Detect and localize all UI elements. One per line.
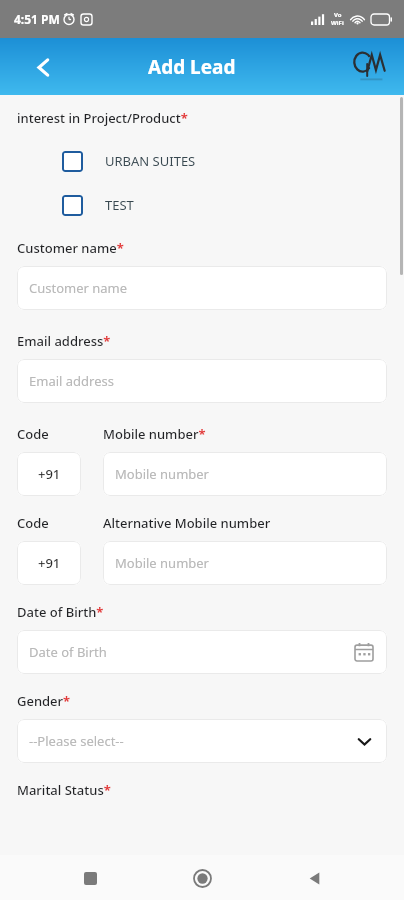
- staticText: Customer name*: [17, 239, 124, 257]
- staticText: Mobile number: [115, 554, 209, 572]
- button[interactable]: +91: [17, 452, 81, 496]
- staticText: 4:51 PM: [14, 11, 60, 27]
- staticText: +91: [38, 554, 61, 572]
- staticText: Vo: [334, 11, 342, 19]
- button[interactable]: Back: [26, 50, 60, 84]
- button[interactable]: Customer name: [17, 266, 387, 310]
- staticText: Mobile number*: [103, 425, 206, 443]
- staticText: Date of Birth*: [17, 603, 104, 621]
- staticText: Alternative Mobile number: [103, 514, 271, 532]
- button[interactable]: Recent apps: [68, 856, 112, 900]
- staticText: WiFi: [331, 19, 344, 27]
- button[interactable]: Back: [292, 856, 336, 900]
- staticText: interest in Project/Product*: [17, 109, 188, 127]
- button[interactable]: --Please select--: [17, 719, 387, 763]
- staticText: +91: [38, 465, 61, 483]
- staticText: Code: [17, 514, 49, 532]
- staticText: Code: [17, 425, 49, 443]
- button[interactable]: URBAN SUITES: [17, 139, 387, 183]
- staticText: Email address: [29, 372, 114, 390]
- button[interactable]: Mobile number: [103, 452, 387, 496]
- staticText: Add Lead: [148, 54, 236, 80]
- staticText: Marital Status*: [17, 781, 111, 799]
- button[interactable]: Home: [180, 856, 224, 900]
- staticText: Email address*: [17, 332, 111, 350]
- button[interactable]: TEST: [17, 183, 387, 227]
- button[interactable]: +91: [17, 541, 81, 585]
- staticText: URBAN SUITES: [105, 152, 196, 170]
- staticText: --Please select--: [29, 732, 124, 750]
- staticText: Gender*: [17, 692, 71, 710]
- staticText: TEST: [105, 196, 134, 214]
- staticText: Date of Birth: [29, 643, 107, 661]
- staticText: Customer name: [29, 279, 128, 297]
- staticText: Mobile number: [115, 465, 209, 483]
- button[interactable]: Date of Birth: [17, 630, 387, 674]
- other: Logo: [348, 44, 394, 90]
- button[interactable]: Email address: [17, 359, 387, 403]
- button[interactable]: Mobile number: [103, 541, 387, 585]
- other: Open gender list: [353, 730, 375, 752]
- other: Pick date: [353, 641, 375, 663]
